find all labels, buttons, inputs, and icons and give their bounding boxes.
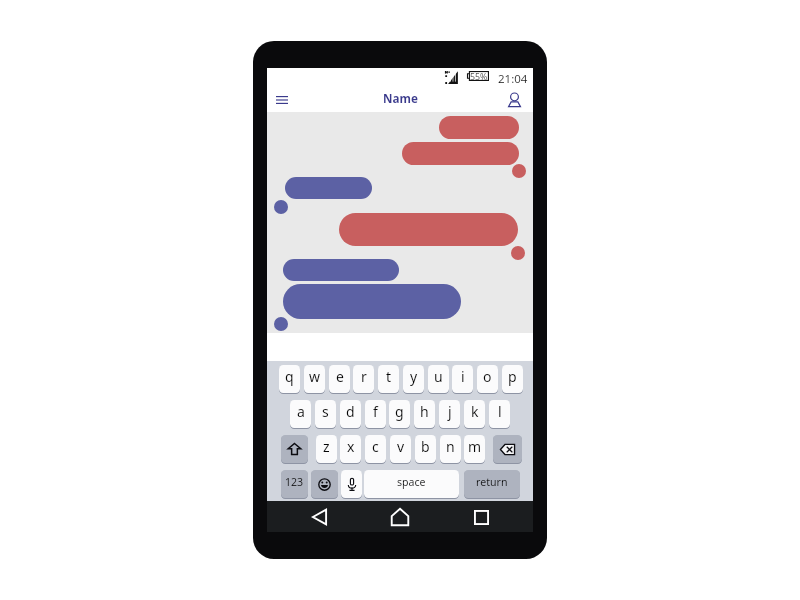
button[interactable]: r bbox=[353, 365, 374, 393]
button[interactable]: e bbox=[329, 365, 350, 393]
button[interactable]: t bbox=[378, 365, 399, 393]
button[interactable]: l bbox=[489, 400, 510, 428]
staticText: c bbox=[372, 437, 379, 456]
button[interactable]: o bbox=[477, 365, 498, 393]
staticText: w bbox=[309, 367, 321, 386]
button[interactable]: 123 bbox=[281, 470, 308, 498]
staticText: u bbox=[434, 367, 443, 386]
staticText: p bbox=[508, 367, 517, 386]
button[interactable]: Shift bbox=[281, 435, 308, 463]
staticText: r bbox=[361, 367, 367, 386]
button[interactable]: s bbox=[315, 400, 336, 428]
staticText: y bbox=[410, 367, 418, 386]
button[interactable]: y bbox=[403, 365, 424, 393]
button[interactable] bbox=[439, 116, 519, 139]
staticText: space bbox=[397, 475, 426, 489]
button[interactable]: j bbox=[439, 400, 460, 428]
staticText: b bbox=[421, 437, 430, 456]
button[interactable] bbox=[402, 142, 519, 165]
staticText: d bbox=[346, 402, 355, 421]
button[interactable]: x bbox=[340, 435, 361, 463]
staticText: s bbox=[322, 402, 329, 421]
button[interactable] bbox=[285, 177, 372, 199]
staticText: m bbox=[468, 437, 482, 456]
staticText: q bbox=[285, 367, 294, 386]
staticText: z bbox=[323, 437, 330, 456]
button[interactable]: Home bbox=[388, 505, 412, 529]
button[interactable]: k bbox=[464, 400, 485, 428]
button[interactable]: Profile bbox=[505, 91, 523, 109]
staticText: i bbox=[461, 367, 465, 386]
button[interactable] bbox=[283, 259, 399, 281]
staticText: x bbox=[347, 437, 355, 456]
staticText: return bbox=[476, 475, 508, 489]
staticText: f bbox=[373, 402, 378, 421]
button[interactable]: i bbox=[452, 365, 473, 393]
button[interactable]: d bbox=[340, 400, 361, 428]
button[interactable]: Back bbox=[307, 505, 331, 529]
button[interactable]: Backspace bbox=[493, 435, 522, 463]
button[interactable]: m bbox=[464, 435, 485, 463]
button[interactable]: q bbox=[279, 365, 300, 393]
staticText: t bbox=[386, 367, 392, 386]
staticText: Name bbox=[383, 90, 418, 106]
button[interactable]: u bbox=[428, 365, 449, 393]
button[interactable]: return bbox=[464, 470, 520, 498]
button[interactable]: c bbox=[365, 435, 386, 463]
button[interactable]: Recents bbox=[469, 505, 493, 529]
staticText: 55% bbox=[470, 71, 488, 81]
staticText: o bbox=[483, 367, 492, 386]
staticText: l bbox=[498, 402, 502, 421]
button[interactable]: f bbox=[365, 400, 386, 428]
staticText: n bbox=[446, 437, 455, 456]
button[interactable]: h bbox=[414, 400, 435, 428]
staticText: a bbox=[297, 402, 305, 421]
button[interactable]: Voice input bbox=[341, 470, 362, 498]
button[interactable] bbox=[339, 213, 518, 246]
button[interactable]: b bbox=[415, 435, 436, 463]
button[interactable]: v bbox=[390, 435, 411, 463]
button[interactable] bbox=[283, 284, 461, 319]
button[interactable]: space bbox=[364, 470, 459, 498]
button[interactable]: n bbox=[440, 435, 461, 463]
staticText: v bbox=[397, 437, 405, 456]
button[interactable]: w bbox=[304, 365, 325, 393]
staticText: 123 bbox=[285, 475, 304, 489]
button[interactable]: Emoji bbox=[311, 470, 338, 498]
staticText: e bbox=[336, 367, 344, 386]
staticText: h bbox=[420, 402, 429, 421]
button[interactable]: g bbox=[389, 400, 410, 428]
button[interactable]: z bbox=[316, 435, 337, 463]
staticText: g bbox=[395, 402, 404, 421]
button[interactable]: p bbox=[502, 365, 523, 393]
staticText: 21:04 bbox=[498, 71, 528, 87]
button[interactable]: a bbox=[290, 400, 311, 428]
staticText: k bbox=[471, 402, 479, 421]
staticText: j bbox=[448, 402, 452, 421]
button[interactable]: Menu bbox=[272, 90, 292, 110]
